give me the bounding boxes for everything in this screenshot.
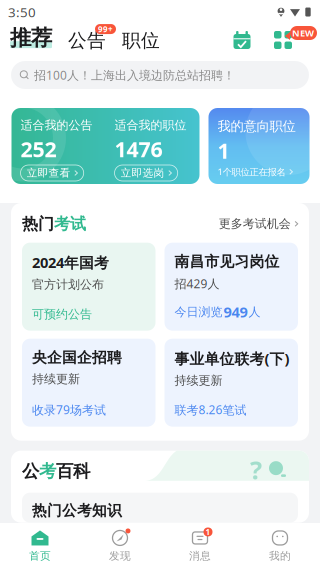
staticText: 持续更新	[174, 373, 222, 388]
staticText: 1476	[114, 135, 162, 163]
staticText: 我的	[269, 549, 291, 562]
button[interactable]: 考试日历	[233, 27, 251, 49]
button[interactable]: 适合我的公告	[11, 108, 199, 184]
button[interactable]: 发现	[80, 523, 160, 569]
staticText: 官方计划公布	[32, 277, 104, 292]
staticText: NEW	[292, 27, 314, 39]
staticText: 立即选岗	[120, 166, 164, 179]
staticText: ?	[250, 453, 262, 486]
staticText: 考	[39, 461, 56, 482]
staticText: 热门	[22, 214, 54, 234]
staticText: 我的意向职位	[217, 118, 295, 134]
staticText: 更多考试机会	[219, 216, 291, 231]
button[interactable]: 推荐	[10, 25, 52, 51]
staticText: 南昌市见习岗位	[174, 253, 279, 271]
staticText: 公	[22, 461, 39, 482]
button[interactable]: 职位	[106, 24, 160, 52]
staticText: 收录79场考试	[32, 402, 106, 418]
staticText: 立即查看	[26, 166, 70, 179]
staticText: 252	[20, 135, 56, 163]
button[interactable]: 首页	[0, 523, 80, 569]
staticText: 发现	[109, 549, 131, 562]
staticText: 考试	[54, 214, 86, 234]
staticText: 央企国企招聘	[32, 349, 122, 367]
staticText: 今日浏览	[174, 304, 222, 319]
staticText: 首页	[29, 549, 51, 562]
staticText: 2024年国考	[32, 253, 109, 272]
staticText: 1	[217, 136, 229, 165]
button[interactable]: 全部功能	[251, 27, 292, 49]
staticText: 百科	[56, 461, 90, 482]
staticText: 公告	[68, 29, 106, 52]
button[interactable]: 我的	[240, 523, 320, 569]
staticText: 推荐	[10, 25, 52, 51]
staticText: 适合我的职位	[114, 118, 186, 133]
button[interactable]: 1	[160, 523, 240, 569]
button[interactable]: 更多考试机会	[219, 216, 298, 231]
staticText: 招429人	[174, 276, 219, 292]
staticText: 1个职位正在报名	[217, 166, 285, 178]
staticText: 可预约公告	[32, 307, 92, 322]
button[interactable]: 2024年国考	[22, 243, 155, 331]
staticText: 3:50	[8, 3, 36, 21]
button[interactable]: 我的意向职位	[208, 108, 309, 184]
staticText: 招100人！上海出入境边防总站招聘！	[34, 67, 235, 83]
button[interactable]: 公告	[52, 24, 106, 52]
staticText: 联考8.26笔试	[174, 402, 246, 418]
staticText: 持续更新	[32, 372, 80, 386]
staticText: 适合我的公告	[20, 118, 92, 133]
staticText: 1	[205, 527, 210, 537]
button[interactable]: 事业单位联考(下)	[164, 339, 298, 427]
button[interactable]: 央企国企招聘	[22, 339, 155, 427]
button[interactable]: 招100人！上海出入境边防总站招聘！	[11, 61, 309, 89]
staticText: 热门公考知识	[32, 502, 122, 520]
staticText: 职位	[122, 29, 160, 52]
button[interactable]: 南昌市见习岗位	[164, 243, 298, 331]
staticText: 事业单位联考(下)	[174, 349, 289, 368]
staticText: 99+	[98, 24, 113, 34]
staticText: 消息	[189, 549, 211, 562]
staticText: 949	[223, 302, 247, 322]
staticText: 人	[248, 304, 260, 319]
